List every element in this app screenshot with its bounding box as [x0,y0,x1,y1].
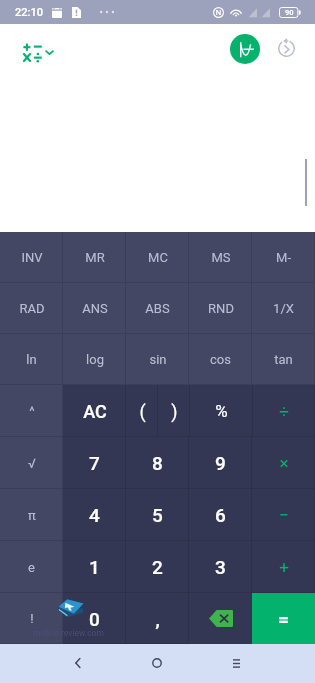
staticText: mobile-review.com [33,628,104,638]
button[interactable]: MR [63,232,126,283]
staticText: tan [274,352,293,367]
staticText: 1 [89,556,100,578]
staticText: 0 [89,608,100,630]
button[interactable]: Graph [230,34,260,64]
staticText: e [28,560,35,575]
button[interactable]: − [252,489,315,541]
button[interactable]: 9 [189,437,252,489]
staticText: % [215,401,228,421]
staticText: MC [148,250,168,265]
button[interactable]: ! [0,593,63,644]
button[interactable]: M- [252,232,315,283]
button[interactable]: π [0,489,63,541]
button[interactable]: ABS [126,283,189,334]
button[interactable]: MC [126,232,189,283]
button[interactable]: 1/X [252,283,315,334]
staticText: sin [149,352,167,367]
staticText: AC [83,401,107,422]
button[interactable]: History [273,35,299,61]
button[interactable]: 3 [189,541,252,593]
button[interactable]: MS [189,232,252,283]
button[interactable]: ln [0,334,63,385]
button[interactable]: , [126,593,189,644]
staticText: 22:10 [15,6,43,19]
button[interactable]: AC [63,385,126,437]
button[interactable]: INV [0,232,63,283]
staticText: INV [21,250,43,265]
staticText: MR [85,250,105,265]
button[interactable]: log [63,334,126,385]
staticText: log [86,352,104,367]
staticText: 90 [285,8,294,17]
button[interactable]: ( [126,385,158,437]
staticText: RAD [19,301,45,316]
staticText: π [28,508,36,523]
staticText: MS [211,250,231,265]
button[interactable]: ÷ [253,385,315,437]
staticText: 5 [152,504,163,526]
staticText: ABS [145,301,170,316]
staticText: √ [28,456,36,471]
staticText: 4 [89,504,100,526]
button[interactable]: × [252,437,315,489]
button[interactable]: 1 [63,541,126,593]
staticText: 1/X [273,301,294,316]
staticText: = [278,608,289,630]
button[interactable]: 4 [63,489,126,541]
staticText: ANS [82,301,108,316]
button[interactable]: 0 [63,593,126,644]
button[interactable]: RND [189,283,252,334]
staticText: − [279,505,289,525]
button[interactable]: Calculator mode [18,32,54,72]
button[interactable]: 6 [189,489,252,541]
button[interactable]: 2 [126,541,189,593]
button[interactable]: 7 [63,437,126,489]
staticText: ln [26,352,37,367]
staticText: 8 [152,452,163,474]
staticText: 7 [89,452,100,474]
button[interactable]: Backspace [189,593,252,644]
button[interactable]: Back [52,645,104,681]
staticText: 3 [215,556,226,578]
button[interactable]: ANS [63,283,126,334]
staticText: ^ [29,404,35,419]
button[interactable]: 5 [126,489,189,541]
staticText: ) [171,401,178,422]
button[interactable]: ^ [0,385,63,437]
staticText: × [279,453,289,473]
button[interactable]: % [190,385,253,437]
button[interactable]: e [0,541,63,593]
button[interactable]: √ [0,437,63,489]
staticText: ÷ [279,401,289,421]
button[interactable]: cos [189,334,252,385]
staticText: ( [139,401,146,422]
button[interactable]: = [252,593,315,644]
button[interactable]: RAD [0,283,63,334]
staticText: cos [210,352,231,367]
button[interactable]: ) [158,385,190,437]
staticText: 2 [152,556,163,578]
button[interactable]: 8 [126,437,189,489]
staticText: 6 [215,504,226,526]
staticText: RND [208,301,234,316]
staticText: 9 [215,452,226,474]
staticText: , [155,608,160,630]
button[interactable]: Recents [210,645,262,681]
button[interactable]: Home [131,645,183,681]
button[interactable]: + [252,541,315,593]
staticText: ! [30,611,34,626]
staticText: M- [276,250,291,265]
button[interactable]: tan [252,334,315,385]
staticText: + [279,557,289,577]
button[interactable]: sin [126,334,189,385]
